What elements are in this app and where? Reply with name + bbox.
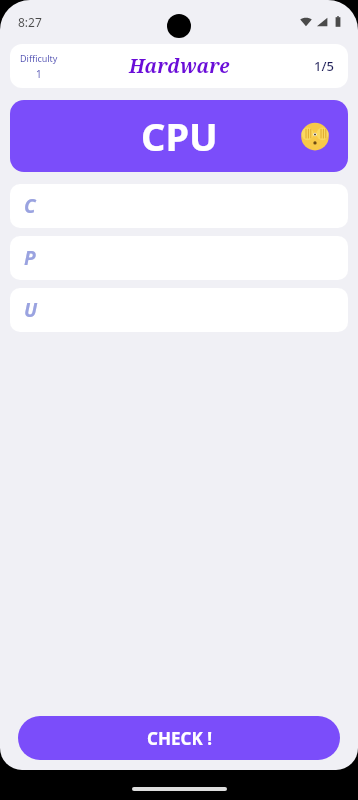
staticText: P <box>24 245 36 271</box>
other: Hidden answer <box>300 121 330 151</box>
staticText: 1/5 <box>314 57 334 75</box>
button[interactable]: Difficulty <box>10 44 348 88</box>
button[interactable]: CPU <box>10 100 348 172</box>
staticText: CHECK ! <box>147 727 212 750</box>
staticText: C <box>24 193 36 219</box>
button[interactable]: CHECK ! <box>18 716 340 760</box>
button[interactable]: U <box>10 288 348 332</box>
staticText: U <box>24 297 38 323</box>
staticText: CPU <box>141 110 218 162</box>
staticText: Difficulty <box>20 52 58 64</box>
button[interactable]: C <box>10 184 348 228</box>
staticText: 1 <box>36 67 42 81</box>
staticText: Hardware <box>129 53 230 79</box>
staticText: 8:27 <box>18 14 42 30</box>
button[interactable]: P <box>10 236 348 280</box>
